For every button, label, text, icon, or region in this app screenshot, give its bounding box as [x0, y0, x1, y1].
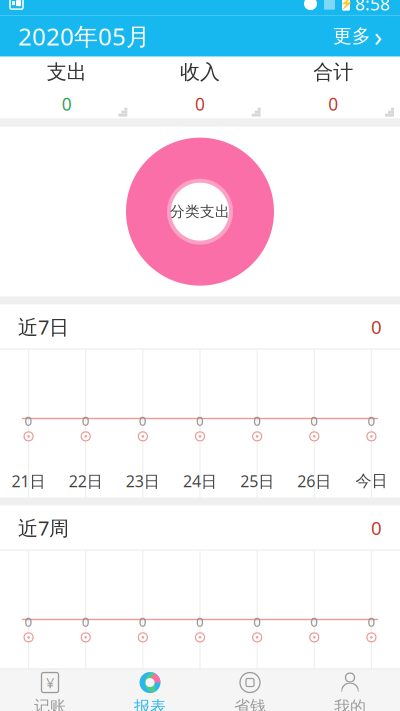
button[interactable]: 收入: [133, 57, 267, 119]
staticText: 0: [82, 613, 90, 630]
staticText: 22日: [69, 470, 103, 492]
staticText: 0: [196, 613, 204, 630]
staticText: 0: [139, 613, 147, 630]
button[interactable]: 更多: [329, 12, 386, 60]
staticText: 0: [25, 412, 33, 429]
button[interactable]: 合计: [267, 57, 400, 119]
staticText: 0: [328, 92, 338, 115]
staticText: 0: [310, 613, 318, 630]
staticText: 0: [371, 314, 382, 339]
staticText: 23日: [126, 470, 160, 492]
staticText: 0: [371, 515, 382, 540]
staticText: 21日: [12, 470, 46, 492]
staticText: 0: [195, 92, 205, 115]
staticText: 分类支出: [170, 203, 230, 221]
staticText: 0: [139, 412, 147, 429]
button[interactable]: ¥: [0, 669, 100, 711]
staticText: 0: [367, 412, 375, 429]
staticText: 省钱: [234, 696, 266, 711]
staticText: 24日: [183, 470, 217, 492]
staticText: ¥: [46, 673, 54, 692]
staticText: 0: [82, 412, 90, 429]
staticText: 报表: [134, 697, 166, 711]
staticText: 0: [310, 412, 318, 429]
staticText: 0: [253, 412, 261, 429]
button[interactable]: 支出: [0, 57, 133, 119]
staticText: 0: [367, 613, 375, 630]
staticText: 更多: [333, 25, 371, 48]
staticText: 合计: [313, 60, 353, 84]
staticText: 记账: [34, 696, 66, 711]
staticText: 近7日: [18, 313, 69, 340]
button[interactable]: 省钱: [200, 669, 300, 711]
staticText: 近7周: [18, 514, 69, 541]
staticText: 0: [62, 92, 72, 115]
staticText: 收入: [180, 60, 220, 84]
staticText: 0: [196, 412, 204, 429]
button[interactable]: 报表: [100, 669, 200, 711]
staticText: 8:58: [355, 0, 390, 15]
staticText: 2020年05月: [18, 20, 150, 52]
staticText: 25日: [240, 470, 274, 492]
staticText: 支出: [47, 60, 87, 84]
staticText: 我的: [334, 697, 366, 711]
staticText: 今日: [355, 471, 387, 491]
button[interactable]: 我的: [300, 669, 400, 711]
staticText: ›: [374, 18, 382, 54]
staticText: 0: [25, 613, 33, 630]
staticText: 0: [253, 613, 261, 630]
staticText: ⚡: [339, 0, 352, 10]
staticText: 26日: [297, 470, 331, 492]
